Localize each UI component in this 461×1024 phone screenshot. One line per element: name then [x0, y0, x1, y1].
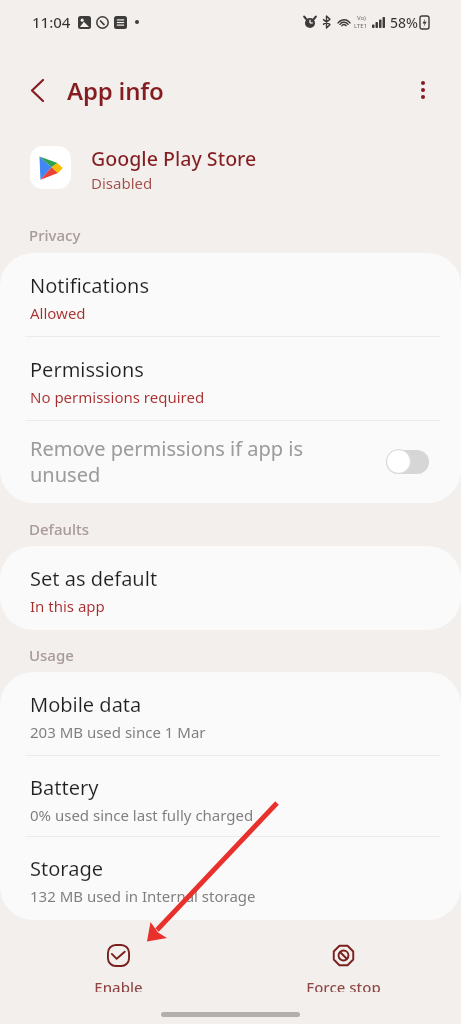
staticText: Enable: [94, 977, 143, 992]
button[interactable]: Google Play Store: [0, 132, 461, 202]
staticText: Google Play Store: [91, 145, 257, 172]
staticText: 11:04: [32, 12, 71, 32]
staticText: Disabled: [91, 173, 153, 193]
button[interactable]: Battery: [0, 755, 461, 836]
button[interactable]: Set as default: [0, 546, 461, 630]
staticText: Mobile data: [30, 691, 142, 718]
staticText: No permissions required: [30, 387, 205, 407]
staticText: In this app: [30, 596, 105, 616]
staticText: 0% used since last fully charged: [30, 805, 254, 825]
button[interactable]: Storage: [0, 836, 461, 920]
button[interactable]: Remove permissions if app is unused: [0, 420, 461, 503]
staticText: Usage: [29, 645, 74, 665]
staticText: Allowed: [30, 303, 86, 323]
button[interactable]: Notifications: [0, 253, 461, 336]
staticText: 58%: [390, 13, 418, 32]
staticText: Set as default: [30, 565, 158, 592]
staticText: Storage: [30, 855, 103, 882]
staticText: Force stop: [306, 977, 381, 992]
staticText: Defaults: [29, 519, 90, 539]
staticText: Battery: [30, 774, 99, 801]
staticText: LTE1: [354, 22, 368, 30]
staticText: Notifications: [30, 272, 149, 299]
staticText: 132 MB used in Internal storage: [30, 886, 256, 906]
staticText: Remove permissions if app is unused: [30, 435, 308, 488]
button[interactable]: Force stop: [273, 932, 413, 1004]
button[interactable]: Permissions: [0, 337, 461, 420]
staticText: Permissions: [30, 356, 144, 383]
button[interactable]: Remove permissions if app is unused togg…: [386, 449, 429, 474]
staticText: App info: [67, 74, 164, 107]
button[interactable]: Mobile data: [0, 672, 461, 755]
button[interactable]: More options: [403, 70, 443, 110]
staticText: 203 MB used since 1 Mar: [30, 722, 206, 742]
button[interactable]: Enable: [48, 932, 188, 1004]
button[interactable]: Navigate up: [17, 70, 57, 110]
staticText: Vo): [357, 14, 366, 22]
staticText: Privacy: [29, 225, 81, 245]
